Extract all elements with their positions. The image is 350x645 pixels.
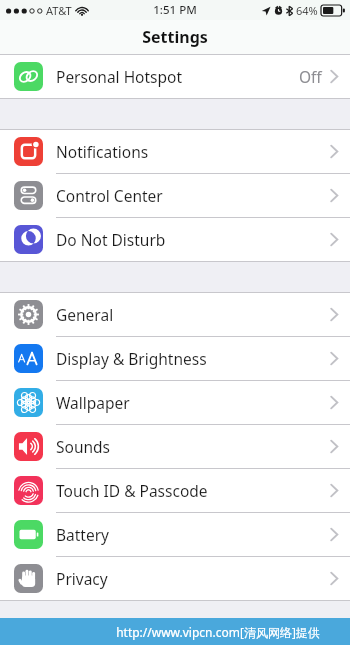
staticText: Personal Hotspot (56, 66, 299, 87)
staticText: Sounds (56, 436, 330, 457)
button[interactable]: Sounds (0, 425, 350, 468)
staticText: General (56, 304, 330, 325)
staticText: Settings (142, 26, 208, 48)
staticText: AT&T (46, 3, 72, 18)
staticText: Control Center (56, 185, 330, 206)
staticText: Wallpaper (56, 392, 330, 413)
staticText: Off (299, 66, 322, 87)
button[interactable]: Wallpaper (0, 381, 350, 424)
staticText: Touch ID & Passcode (56, 480, 330, 501)
staticText: 1:51 PM (153, 2, 197, 18)
button[interactable]: Privacy (0, 557, 350, 600)
staticText: Display & Brightness (56, 348, 330, 369)
staticText: Do Not Disturb (56, 229, 330, 250)
button[interactable]: Battery (0, 513, 350, 556)
button[interactable]: Touch ID & Passcode (0, 469, 350, 512)
button[interactable]: Personal Hotspot (0, 55, 350, 98)
staticText: http://www.vipcn.com[清风网络]提供 (116, 624, 320, 640)
button[interactable]: General (0, 293, 350, 336)
button[interactable]: Control Center (0, 174, 350, 217)
button[interactable]: Display & Brightness (0, 337, 350, 380)
staticText: Notifications (56, 141, 330, 162)
button[interactable]: Do Not Disturb (0, 218, 350, 261)
staticText: Privacy (56, 568, 330, 589)
staticText: 64% (296, 3, 318, 18)
button[interactable]: Notifications (0, 130, 350, 173)
staticText: Battery (56, 524, 330, 545)
